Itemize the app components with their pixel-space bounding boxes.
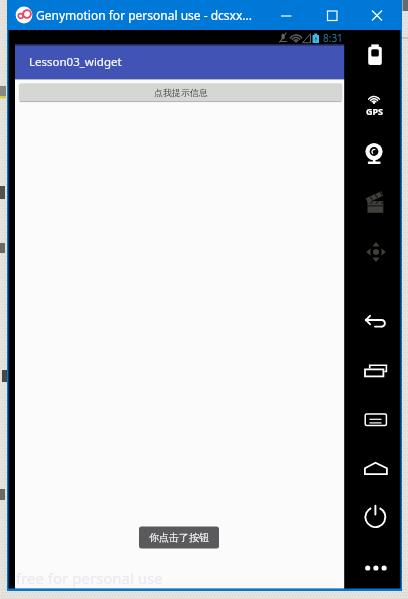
button[interactable]: 点我提示信息 [19, 83, 342, 102]
staticText: 8:31 [323, 31, 343, 45]
button[interactable] [363, 0, 393, 30]
staticText: GPS [366, 105, 384, 117]
staticText: free for personal use [16, 568, 163, 588]
button[interactable] [354, 496, 398, 538]
button[interactable] [354, 133, 398, 175]
button[interactable] [354, 83, 398, 125]
staticText: Genymotion for personal use - dcsxx... [36, 7, 252, 23]
button[interactable] [354, 447, 398, 489]
staticText: 点我提示信息 [154, 87, 208, 98]
button[interactable] [354, 37, 398, 79]
staticText: 你点击了按钮 [149, 531, 209, 544]
button[interactable] [272, 0, 302, 30]
button[interactable] [354, 231, 398, 273]
button[interactable] [318, 0, 348, 30]
button[interactable] [354, 349, 398, 391]
button[interactable] [354, 399, 398, 441]
button[interactable] [354, 301, 398, 343]
button[interactable] [354, 547, 398, 589]
button[interactable] [354, 181, 398, 223]
staticText: Lesson03_widget [29, 54, 122, 70]
